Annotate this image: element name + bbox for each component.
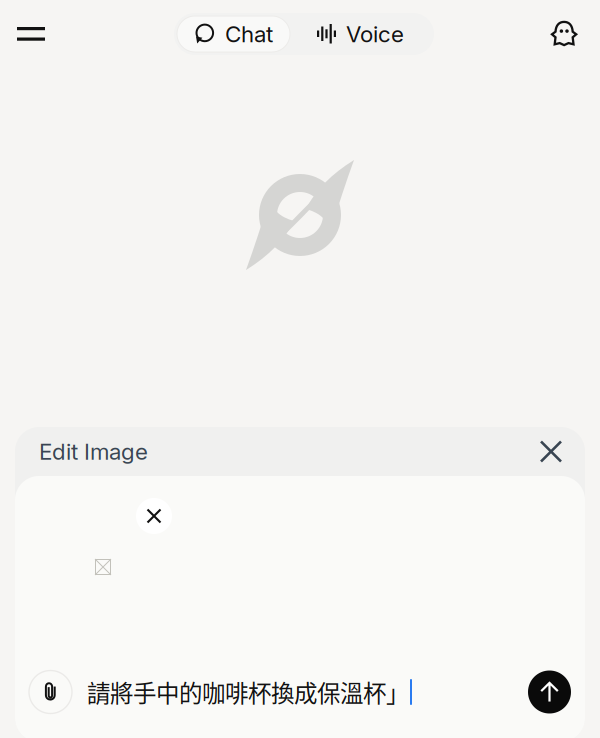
button[interactable]: Voice bbox=[290, 16, 431, 52]
button[interactable]: Send bbox=[528, 670, 571, 713]
staticText: Chat bbox=[225, 20, 273, 47]
button[interactable]: Remove image bbox=[136, 498, 172, 534]
staticText: Voice bbox=[346, 20, 404, 47]
button[interactable]: Attach bbox=[29, 670, 72, 713]
image bbox=[95, 559, 111, 575]
button[interactable]: Profile bbox=[542, 11, 586, 55]
staticText: 請將手中的咖啡杯換成保溫杯」 bbox=[87, 675, 409, 709]
button[interactable]: Close bbox=[529, 429, 573, 473]
button[interactable]: Chat bbox=[177, 16, 290, 52]
button[interactable]: Menu bbox=[7, 10, 55, 58]
staticText: Edit Image bbox=[39, 438, 148, 465]
